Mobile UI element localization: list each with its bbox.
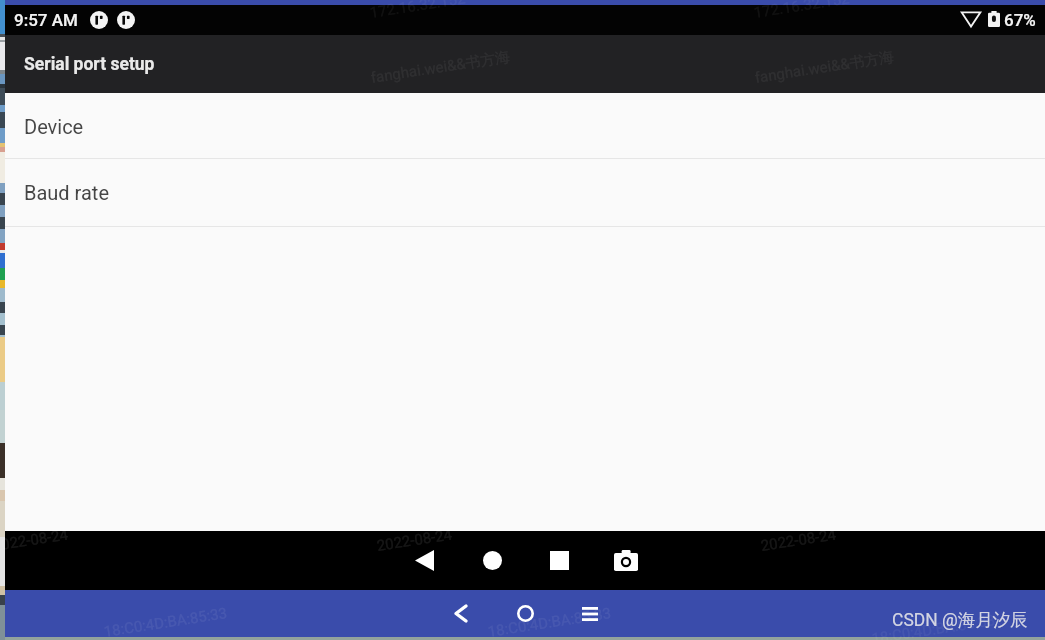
button[interactable]: Screenshot xyxy=(604,531,648,590)
staticText: 18:C0:4D:BA:85:33 xyxy=(871,611,997,640)
staticText: 2022-08-24 xyxy=(376,525,453,555)
staticText: 9:57 AM xyxy=(14,10,78,30)
staticText: 172.16.32.152 xyxy=(369,0,467,22)
staticText: fanghai.wei&&书方海 xyxy=(369,47,512,88)
staticText: 2022-08-24 xyxy=(0,525,69,555)
button[interactable]: Back xyxy=(402,531,446,590)
button[interactable]: Baud rate xyxy=(5,159,1045,226)
button[interactable]: Home xyxy=(504,590,546,637)
staticText: 18:C0:4D:BA:85:33 xyxy=(487,604,613,640)
button[interactable]: Back xyxy=(440,590,482,637)
staticText: Device xyxy=(24,115,84,138)
staticText: CSDN @海月汐辰 xyxy=(892,609,1028,631)
staticText: 67% xyxy=(1004,10,1036,30)
staticText: 172.16.32.152 xyxy=(753,0,851,22)
staticText: 18:C0:4D:BA:85:33 xyxy=(103,604,229,640)
staticText: Serial port setup xyxy=(24,54,155,75)
staticText: fanghai.wei&&书方海 xyxy=(753,47,896,88)
button[interactable]: Menu xyxy=(569,590,611,637)
button[interactable]: Home xyxy=(470,531,514,590)
button[interactable]: Device xyxy=(5,93,1045,158)
button[interactable]: Recents xyxy=(537,531,581,590)
staticText: 2022-08-24 xyxy=(760,525,837,555)
staticText: Baud rate xyxy=(24,181,110,204)
